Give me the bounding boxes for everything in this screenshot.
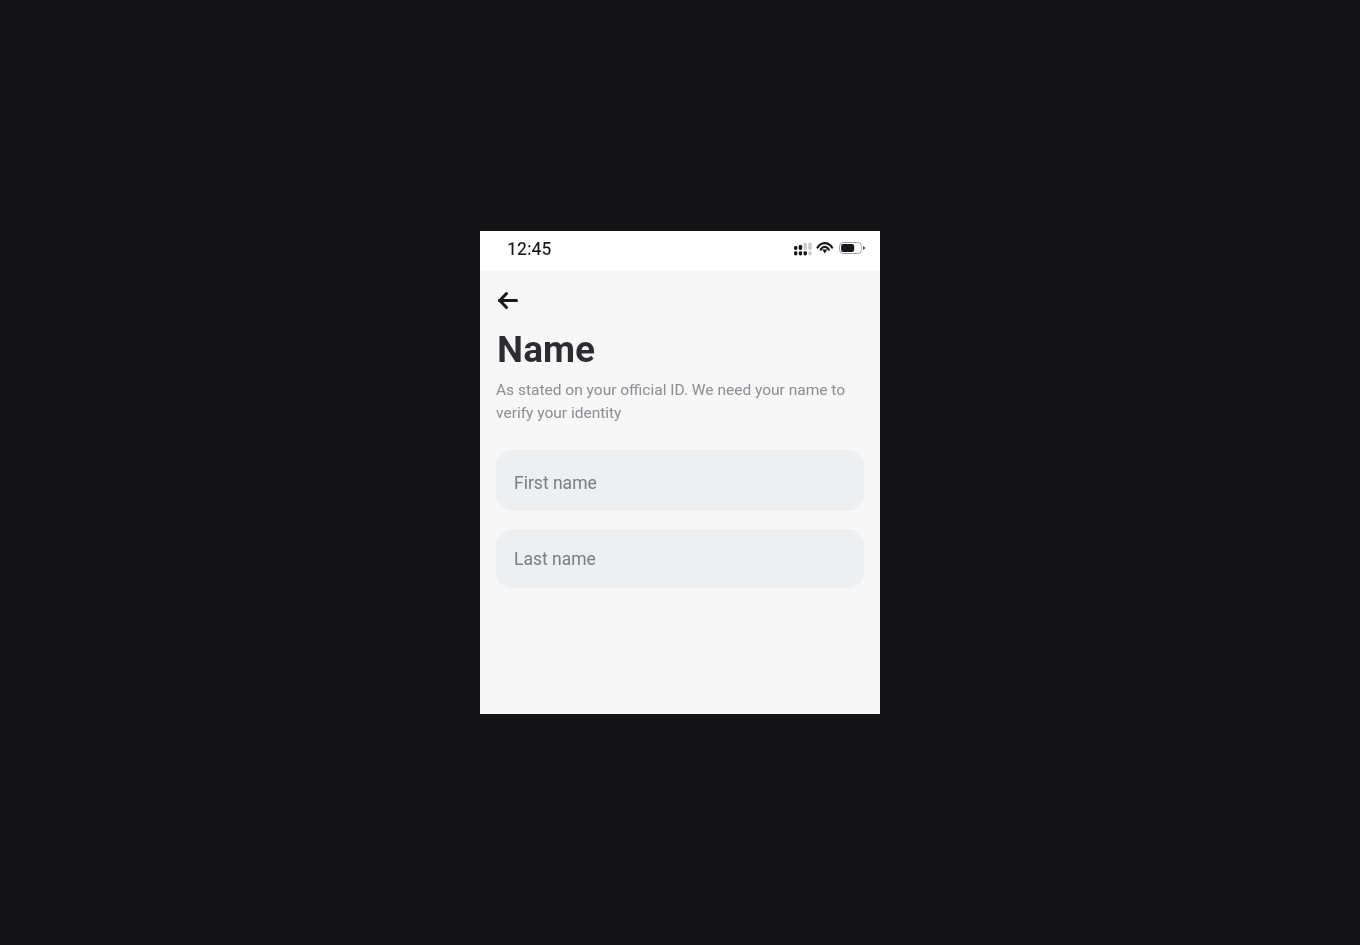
staticText: Name (497, 328, 596, 371)
staticText: As stated on your official ID. We need y… (496, 381, 848, 422)
button[interactable]: Back (488, 280, 528, 320)
staticText: First name (514, 473, 597, 494)
staticText: Last name (514, 549, 596, 570)
staticText: 12:45 (507, 239, 552, 260)
button[interactable]: Last name (496, 529, 864, 588)
button[interactable]: First name (496, 450, 864, 511)
